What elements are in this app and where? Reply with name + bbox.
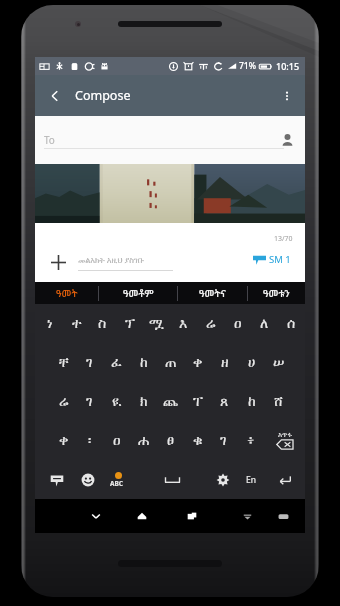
staticText: ጨ — [163, 395, 179, 409]
staticText: ዪ — [112, 395, 122, 409]
staticText: ሬ — [206, 317, 216, 331]
button[interactable]: ተ — [63, 304, 90, 343]
staticText: ሰ — [287, 317, 296, 331]
button[interactable]: ዓመትና — [178, 282, 247, 304]
staticText: ዘ — [221, 356, 229, 370]
button[interactable]: To — [35, 116, 305, 164]
staticText: ዐ — [234, 317, 242, 331]
button[interactable]: Voice input — [43, 460, 70, 499]
button[interactable]: Space — [155, 460, 189, 499]
button[interactable]: ስ — [89, 304, 116, 343]
staticText: 10:15 — [276, 60, 300, 72]
staticText: ዓመትና — [199, 286, 226, 300]
staticText: 71% — [239, 60, 256, 72]
button[interactable]: ክ — [130, 382, 157, 421]
button[interactable]: ዘ — [211, 343, 238, 382]
staticText: ቸ — [59, 356, 69, 370]
button[interactable]: SM 1 — [253, 250, 291, 268]
staticText: ገ — [86, 395, 93, 409]
button[interactable]: Hide keyboard — [75, 499, 117, 533]
button[interactable]: ሸ — [265, 382, 292, 421]
button[interactable]: ሠ — [265, 343, 292, 382]
button[interactable]: እ — [170, 304, 197, 343]
button[interactable]: ጨ — [157, 382, 184, 421]
button[interactable]: ፈ — [103, 343, 130, 382]
button[interactable]: ሰ — [278, 304, 305, 343]
button[interactable]: ፐ — [184, 382, 211, 421]
staticText: ገ — [220, 434, 227, 448]
button[interactable]: Keyboard settings — [209, 460, 236, 499]
button[interactable]: Enter — [270, 460, 300, 499]
staticText: ዓመቱን — [263, 286, 290, 300]
staticText: ዐ — [113, 434, 121, 448]
staticText: To — [44, 133, 55, 147]
button[interactable]: ዓመቱን — [248, 282, 305, 304]
button[interactable]: Switch to ABC — [102, 460, 129, 499]
staticText: ተ — [72, 317, 82, 331]
button[interactable]: ቁ — [184, 421, 211, 460]
button[interactable]: Change keyboard — [265, 499, 301, 533]
staticText: ጸ — [220, 395, 229, 409]
button[interactable]: ሬ — [50, 382, 77, 421]
staticText: ABC — [110, 479, 123, 488]
button[interactable]: Navigate up — [35, 75, 75, 116]
button[interactable]: ገ — [76, 382, 103, 421]
button[interactable]: ዪ — [103, 382, 130, 421]
button[interactable]: ሟ — [143, 304, 170, 343]
button[interactable]: ሀ — [238, 343, 265, 382]
button[interactable]: ዐ — [224, 304, 251, 343]
button[interactable]: Choose contact — [277, 129, 297, 149]
button[interactable]: More options — [269, 75, 305, 116]
staticText: En — [246, 474, 256, 486]
staticText: ሐ — [138, 434, 150, 448]
staticText: ቀ — [193, 356, 203, 370]
button[interactable]: ገ — [76, 343, 103, 382]
staticText: እ — [179, 317, 188, 331]
button[interactable]: ቀ — [50, 421, 77, 460]
button[interactable]: ፕ — [116, 304, 143, 343]
button[interactable]: ቸ — [50, 343, 77, 382]
button[interactable]: ዐ — [103, 421, 130, 460]
button[interactable]: ጠ — [157, 343, 184, 382]
button[interactable]: ከ — [238, 382, 265, 421]
staticText: ስ — [98, 317, 107, 331]
button[interactable]: Collapse — [229, 499, 265, 533]
staticText: ገ — [86, 356, 93, 370]
staticText: SM 1 — [269, 253, 291, 266]
button[interactable]: ፥ — [237, 421, 264, 460]
button[interactable]: ገ — [210, 421, 237, 460]
staticText: Compose — [75, 87, 131, 104]
staticText: ከ — [248, 395, 256, 409]
staticText: ዓመቶም — [123, 286, 154, 300]
staticText: ፐ — [193, 395, 203, 409]
staticText: ፡ — [88, 434, 92, 448]
button[interactable]: Home — [117, 499, 167, 533]
button[interactable]: ዓመቶም — [99, 282, 177, 304]
button[interactable]: ቀ — [184, 343, 211, 382]
staticText: ፕ — [125, 317, 135, 331]
button[interactable]: Recent apps — [167, 499, 217, 533]
button[interactable]: Emoji — [74, 460, 101, 499]
staticText: ፀ — [167, 434, 174, 448]
staticText: ቀ — [59, 434, 69, 448]
staticText: ሀ — [248, 356, 256, 370]
staticText: አጥፋ — [278, 431, 292, 438]
button[interactable]: ሬ — [197, 304, 224, 343]
button[interactable]: ሐ — [130, 421, 157, 460]
button[interactable]: ጸ — [211, 382, 238, 421]
button[interactable]: ነ — [36, 304, 63, 343]
staticText: ፥ — [247, 434, 255, 448]
staticText: ለ — [260, 317, 269, 331]
staticText: ክ — [140, 395, 148, 409]
staticText: ሸ — [274, 395, 283, 409]
button[interactable]: Switch language — [237, 460, 264, 499]
button[interactable]: ዓመት — [35, 282, 98, 304]
staticText: ነ — [47, 317, 53, 331]
button[interactable]: ከ — [130, 343, 157, 382]
staticText: 13/70 — [274, 234, 293, 244]
button[interactable]: ፡ — [76, 421, 103, 460]
button[interactable]: ፀ — [157, 421, 184, 460]
button[interactable]: Add attachment — [45, 249, 71, 275]
button[interactable]: ለ — [251, 304, 278, 343]
button[interactable]: Backspace — [264, 421, 305, 460]
